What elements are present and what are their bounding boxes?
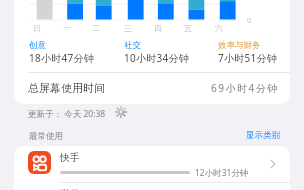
- staticText: 二: [92, 23, 100, 33]
- staticText: 显示类别: [246, 130, 280, 141]
- staticText: 7小时51分钟: [218, 51, 277, 65]
- staticText: 三: [124, 23, 132, 33]
- staticText: 最常使用: [29, 131, 63, 142]
- staticText: 0: [247, 15, 252, 25]
- staticText: 快手: [60, 151, 80, 164]
- other: 查看详情: [269, 158, 277, 170]
- staticText: 10小时34分钟: [124, 51, 189, 65]
- staticText: 四: [154, 23, 162, 33]
- staticText: 更新于： 今天 20:38: [28, 108, 106, 120]
- staticText: 微信: [60, 187, 80, 190]
- staticText: 69小时4分钟: [211, 81, 279, 95]
- staticText: 社交: [124, 40, 141, 51]
- button[interactable]: 显示类别: [237, 128, 280, 142]
- staticText: 12小时31分钟: [195, 167, 249, 179]
- staticText: 一: [63, 23, 71, 33]
- staticText: 六: [215, 23, 223, 33]
- button[interactable]: [14, 146, 290, 182]
- staticText: 18小时47分钟: [29, 51, 94, 65]
- button[interactable]: [14, 182, 290, 190]
- staticText: 效率与财务: [218, 40, 261, 51]
- staticText: 创意: [29, 40, 46, 51]
- staticText: 五: [184, 23, 192, 33]
- staticText: 日: [33, 23, 41, 33]
- staticText: 总屏幕使用时间: [28, 81, 105, 95]
